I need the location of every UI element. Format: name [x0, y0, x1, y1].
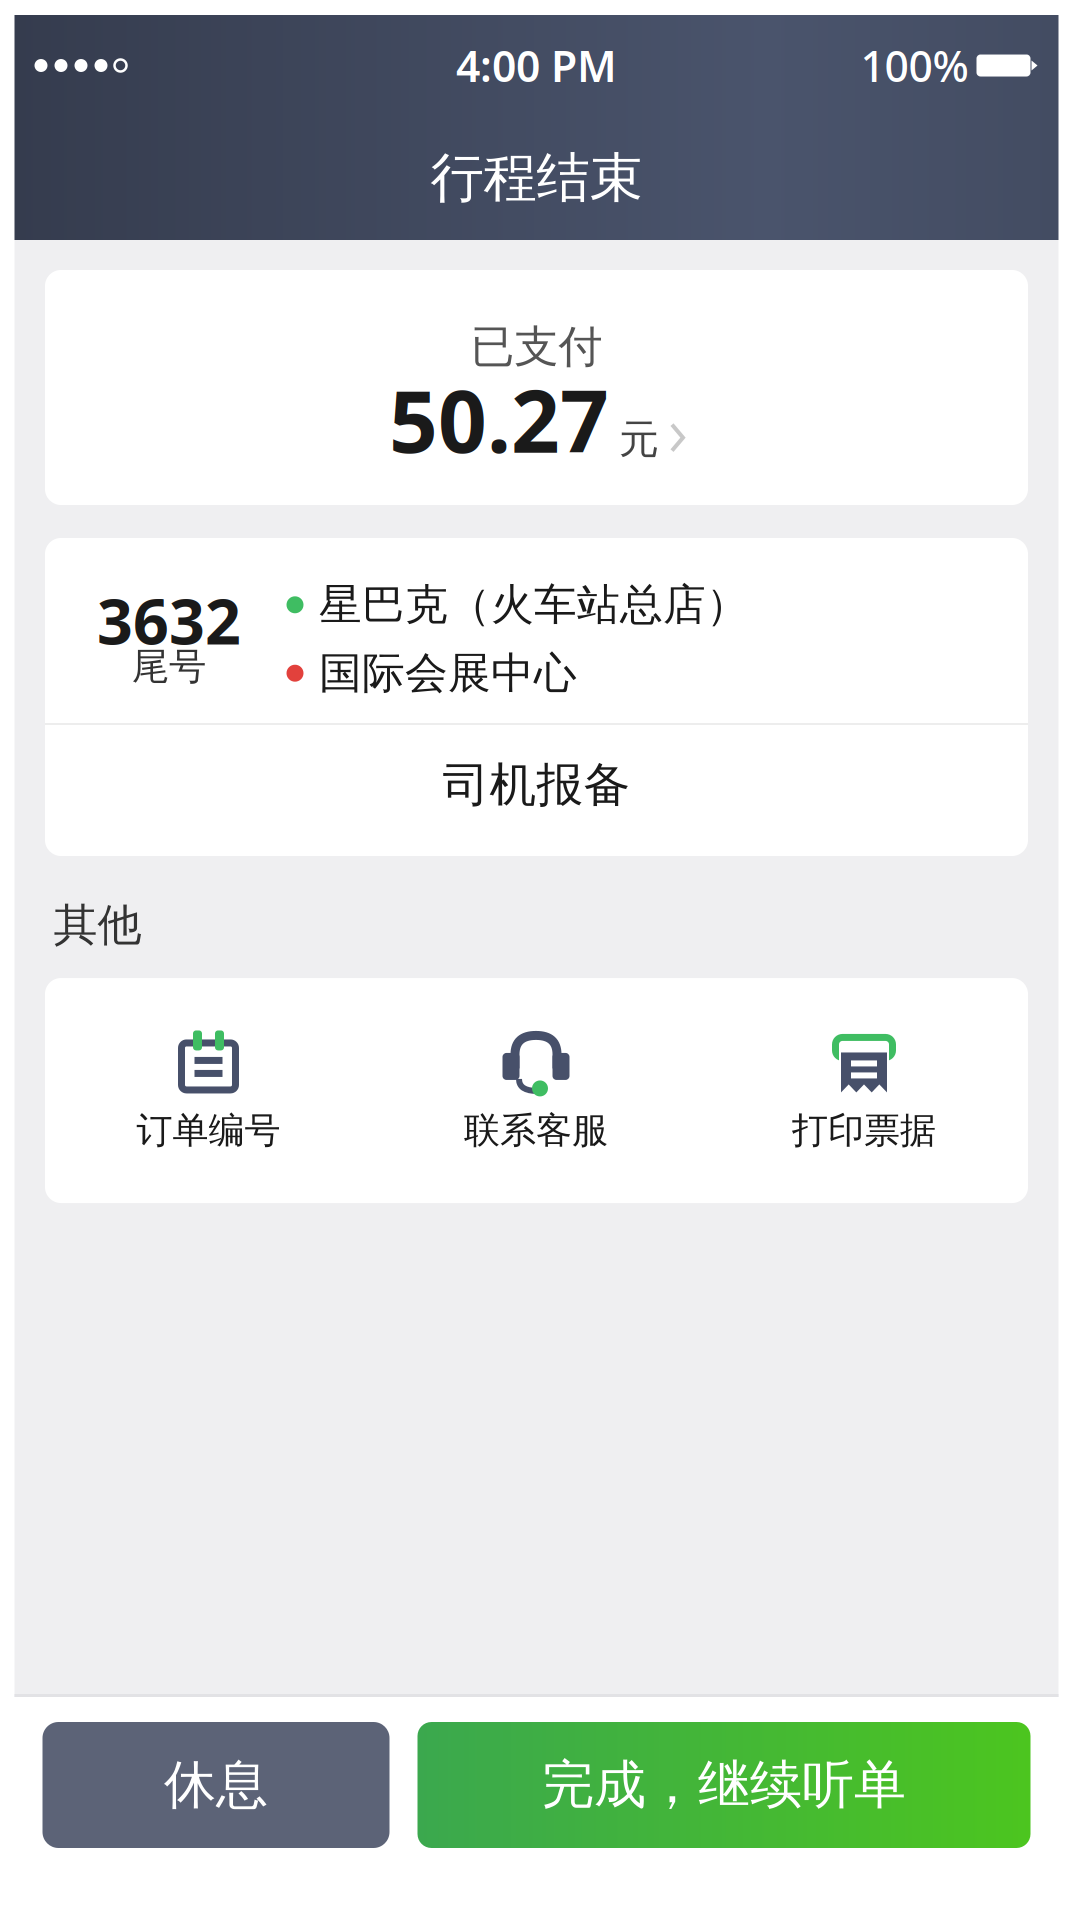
button[interactable]: 司机报备	[45, 725, 1028, 856]
staticText: 已支付	[470, 320, 602, 374]
staticText: 50.27	[389, 363, 609, 476]
staticText: 休息	[164, 1753, 268, 1817]
button[interactable]: 已支付	[45, 270, 1028, 505]
button[interactable]: 订单编号	[45, 978, 372, 1203]
staticText: 3632	[97, 578, 241, 662]
button[interactable]: 打印票据	[700, 978, 1028, 1203]
button[interactable]: 联系客服	[372, 978, 700, 1203]
staticText: 星巴克（火车站总店）	[319, 579, 749, 631]
staticText: 其他	[53, 898, 141, 952]
staticText: 元	[619, 415, 659, 464]
staticText: 4:00 PM	[456, 37, 617, 94]
staticText: 打印票据	[792, 1108, 936, 1153]
staticText: 100%	[860, 37, 968, 94]
staticText: 尾号	[132, 644, 206, 690]
staticText: 联系客服	[464, 1108, 608, 1153]
staticText: 司机报备	[442, 756, 630, 814]
staticText: 行程结束	[430, 145, 642, 211]
button[interactable]: 完成，继续听单	[417, 1722, 1030, 1848]
staticText: 完成，继续听单	[542, 1753, 906, 1817]
staticText: 国际会展中心	[319, 647, 577, 699]
button[interactable]: 休息	[42, 1722, 389, 1848]
staticText: 订单编号	[136, 1108, 280, 1153]
